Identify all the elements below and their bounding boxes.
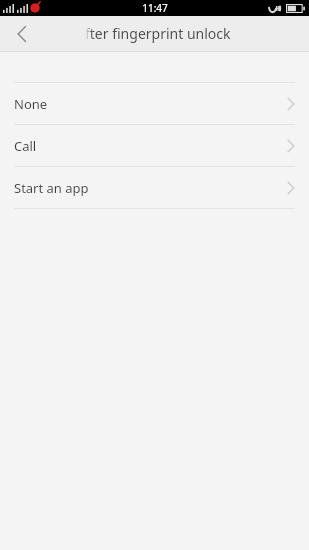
- button[interactable]: Call: [0, 125, 309, 166]
- staticText: Call: [14, 137, 287, 155]
- button[interactable]: None: [0, 83, 309, 124]
- staticText: 11:47: [142, 1, 168, 15]
- button[interactable]: Start an app: [0, 167, 309, 208]
- staticText: None: [14, 95, 287, 113]
- button[interactable]: Back: [0, 16, 44, 52]
- staticText: fter fingerprint unlock: [85, 24, 231, 43]
- staticText: Start an app: [14, 179, 287, 197]
